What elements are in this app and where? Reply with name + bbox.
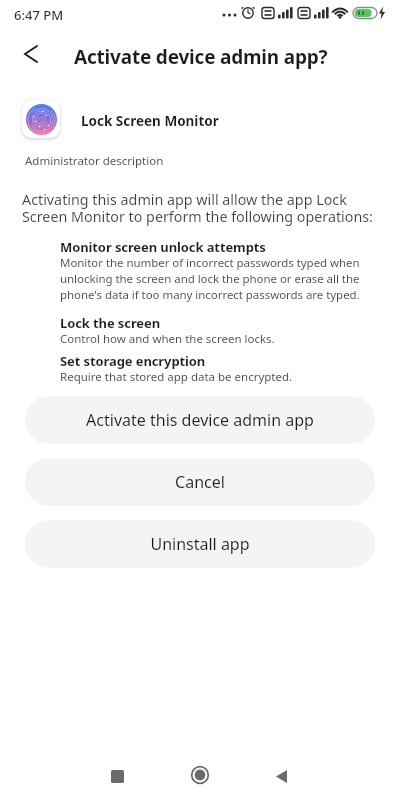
staticText: Administrator description (25, 153, 164, 169)
staticText: Control how and when the screen locks. (60, 331, 275, 347)
staticText: 6:47 PM (14, 6, 64, 24)
staticText: Uninstall app (150, 533, 250, 555)
button[interactable]: Activate this device admin app (25, 396, 375, 444)
button[interactable] (97, 756, 137, 796)
button[interactable] (180, 755, 220, 795)
staticText: Monitor the number of incorrect password… (60, 255, 360, 303)
staticText: Lock Screen Monitor (81, 112, 219, 130)
button[interactable]: Uninstall app (25, 520, 375, 568)
staticText: Monitor screen unlock attempts (60, 238, 266, 256)
staticText: Activate device admin app? (74, 44, 328, 70)
staticText: Lock the screen (60, 314, 161, 332)
staticText: Cancel (175, 471, 225, 493)
staticText: Set storage encryption (60, 352, 206, 370)
staticText: Require that stored app data be encrypte… (60, 369, 293, 385)
staticText: Activate this device admin app (86, 409, 314, 431)
button[interactable] (261, 756, 301, 796)
staticText: Activating this admin app will allow the… (22, 190, 373, 226)
button[interactable] (17, 40, 45, 68)
button[interactable]: Cancel (25, 458, 375, 506)
